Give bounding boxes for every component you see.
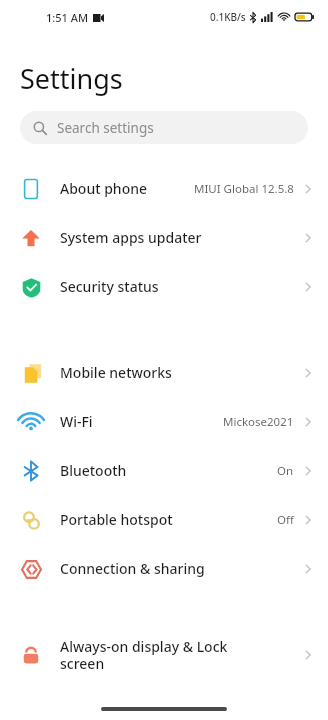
staticText: Always-on display & Lock screen: [60, 637, 302, 673]
button[interactable]: Bluetooth: [0, 446, 328, 495]
button[interactable]: System apps updater: [0, 213, 328, 262]
staticText: Off: [277, 512, 294, 528]
button[interactable]: Search settings: [20, 111, 308, 144]
staticText: 1:51 AM: [46, 10, 89, 25]
button[interactable]: Always-on display & Lock screen: [0, 630, 328, 679]
staticText: 0.1KB/s: [210, 10, 246, 24]
staticText: MIUI Global 12.5.8: [194, 181, 294, 197]
staticText: Connection & sharing: [60, 559, 302, 578]
button[interactable]: Wi-Fi: [0, 397, 328, 446]
staticText: Mickose2021: [223, 414, 294, 430]
button[interactable]: Mobile networks: [0, 348, 328, 397]
button[interactable]: Portable hotspot: [0, 495, 328, 544]
staticText: Mobile networks: [60, 363, 302, 382]
staticText: Search settings: [57, 119, 154, 137]
staticText: Portable hotspot: [60, 510, 277, 529]
staticText: About phone: [60, 179, 194, 198]
button[interactable]: Connection & sharing: [0, 544, 328, 593]
staticText: On: [277, 463, 294, 479]
button[interactable]: Security status: [0, 262, 328, 311]
staticText: Bluetooth: [60, 461, 277, 480]
staticText: Wi-Fi: [60, 412, 223, 431]
staticText: Settings: [20, 60, 123, 97]
staticText: Security status: [60, 277, 302, 296]
staticText: System apps updater: [60, 228, 302, 247]
button[interactable]: About phone: [0, 164, 328, 213]
